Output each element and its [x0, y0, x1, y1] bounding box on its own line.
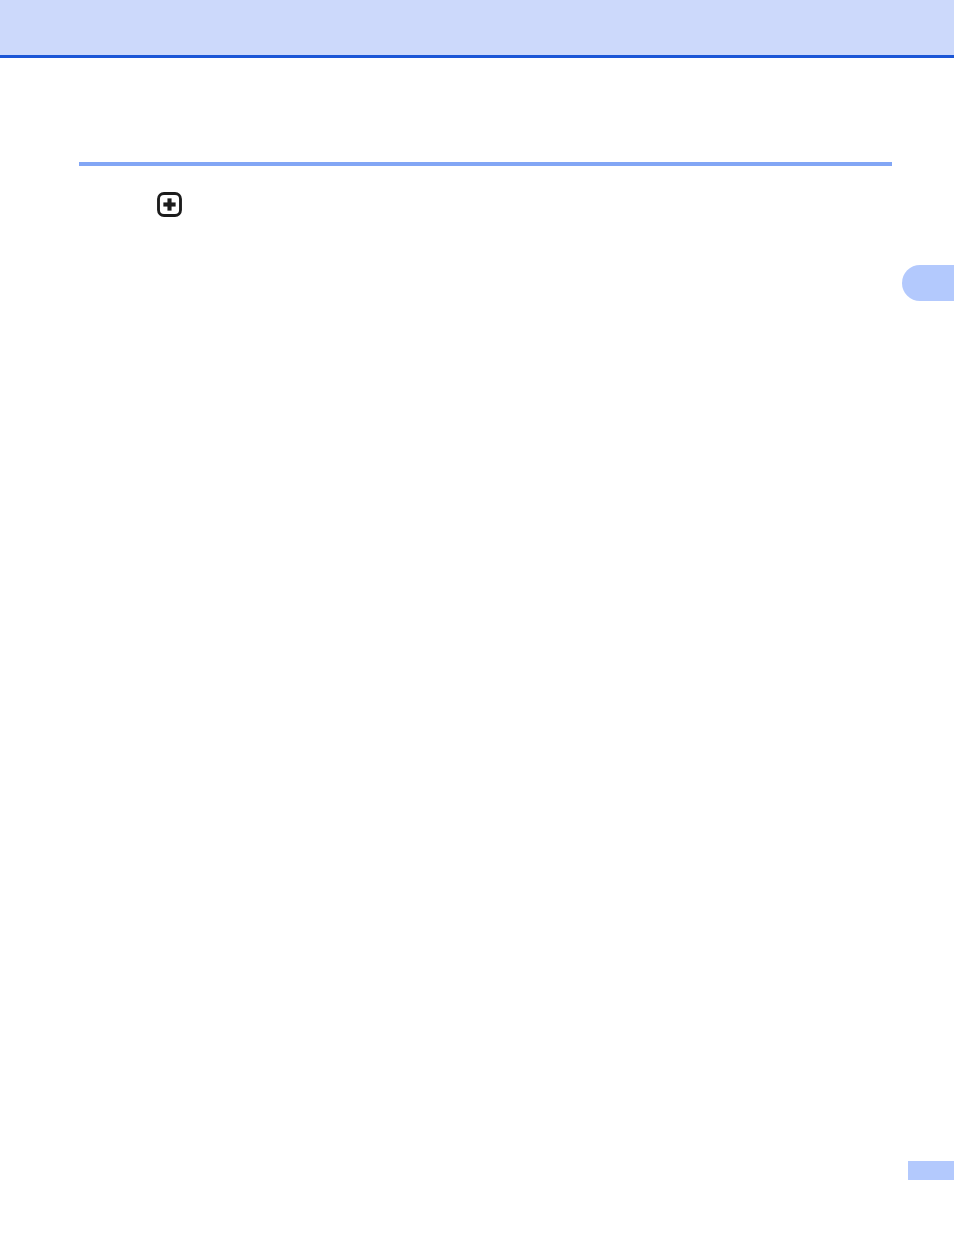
- button[interactable]: Section tab: [902, 265, 954, 301]
- button[interactable]: Add: [157, 192, 182, 217]
